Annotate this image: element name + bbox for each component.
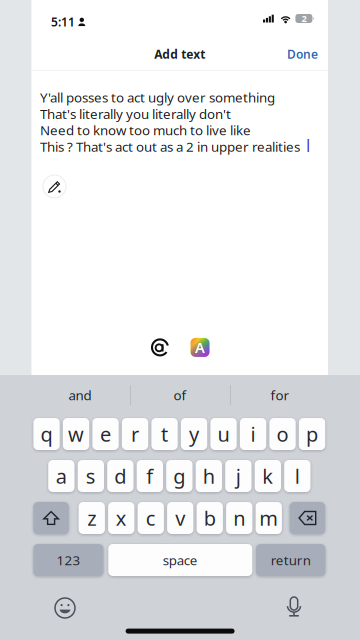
button[interactable]: y xyxy=(181,418,207,450)
button[interactable]: Markup xyxy=(43,175,66,198)
staticText: of xyxy=(173,386,186,404)
staticText: i xyxy=(251,421,256,447)
staticText: 5:11 xyxy=(51,14,75,30)
button[interactable]: d xyxy=(107,460,133,492)
staticText: m xyxy=(259,505,278,531)
button[interactable]: e xyxy=(92,418,119,450)
staticText: Add text xyxy=(154,46,205,62)
button[interactable]: Emoji xyxy=(48,593,82,623)
button[interactable]: m xyxy=(256,502,282,534)
staticText: j xyxy=(236,463,241,489)
button[interactable]: s xyxy=(78,460,104,492)
staticText: a xyxy=(56,463,67,489)
staticText: y xyxy=(189,421,199,447)
button[interactable]: a xyxy=(48,460,74,492)
staticText: n xyxy=(233,505,245,531)
staticText: and xyxy=(68,386,91,404)
button[interactable]: r xyxy=(122,418,148,450)
button[interactable]: t xyxy=(151,418,178,450)
staticText: s xyxy=(86,463,96,489)
button[interactable]: g xyxy=(166,460,192,492)
button[interactable]: q xyxy=(33,418,60,450)
button[interactable]: p xyxy=(299,418,325,450)
button[interactable]: of xyxy=(130,376,230,414)
button[interactable]: u xyxy=(210,418,237,450)
button[interactable]: v xyxy=(167,502,193,534)
button[interactable]: Text effects xyxy=(190,338,209,357)
button[interactable]: j xyxy=(225,460,251,492)
button[interactable]: n xyxy=(226,502,252,534)
button[interactable]: z xyxy=(79,502,105,534)
button[interactable]: space xyxy=(108,544,252,576)
staticText: p xyxy=(306,421,318,447)
button[interactable]: f xyxy=(137,460,163,492)
button[interactable]: x xyxy=(108,502,134,534)
button[interactable]: return xyxy=(256,544,325,576)
staticText: r xyxy=(131,421,139,447)
button[interactable]: i xyxy=(240,418,266,450)
staticText: u xyxy=(218,421,230,447)
staticText: d xyxy=(114,463,126,489)
staticText: Y'all posses to act ugly over something xyxy=(40,88,275,106)
button[interactable]: o xyxy=(269,418,296,450)
button[interactable]: Done xyxy=(272,44,318,64)
staticText: f xyxy=(146,463,153,489)
button[interactable]: for xyxy=(230,376,330,414)
staticText: v xyxy=(175,505,185,531)
staticText: for xyxy=(270,386,289,404)
staticText: 2 xyxy=(301,12,306,25)
staticText: 123 xyxy=(56,551,80,569)
button[interactable]: Shift xyxy=(33,502,69,534)
staticText: h xyxy=(203,463,215,489)
staticText: space xyxy=(163,551,198,569)
staticText: g xyxy=(173,463,185,489)
staticText: o xyxy=(276,421,288,447)
button[interactable]: l xyxy=(284,460,310,492)
staticText: A xyxy=(195,338,205,357)
staticText: b xyxy=(204,505,216,531)
button[interactable]: w xyxy=(63,418,89,450)
staticText: That's literally you literally don't xyxy=(40,105,231,123)
staticText: z xyxy=(87,505,96,531)
button[interactable]: h xyxy=(196,460,222,492)
staticText: return xyxy=(271,551,311,569)
button[interactable]: b xyxy=(197,502,223,534)
staticText: w xyxy=(68,421,84,447)
button[interactable]: Mention someone xyxy=(150,338,169,357)
button[interactable]: 123 xyxy=(33,544,103,576)
staticText: k xyxy=(262,463,273,489)
button[interactable]: k xyxy=(255,460,281,492)
button[interactable]: c xyxy=(138,502,164,534)
button[interactable]: Delete xyxy=(290,502,325,534)
staticText: e xyxy=(100,421,111,447)
staticText: x xyxy=(116,505,127,531)
staticText: Need to know too much to live like xyxy=(40,121,251,139)
button[interactable]: Dictate xyxy=(277,592,311,622)
staticText: t xyxy=(161,421,168,447)
staticText: This ? That's act out as a 2 in upper re… xyxy=(40,138,300,155)
staticText: l xyxy=(295,463,300,489)
staticText: Done xyxy=(287,46,318,62)
button[interactable]: and xyxy=(30,376,130,414)
staticText: q xyxy=(40,421,52,447)
staticText: c xyxy=(146,505,156,531)
